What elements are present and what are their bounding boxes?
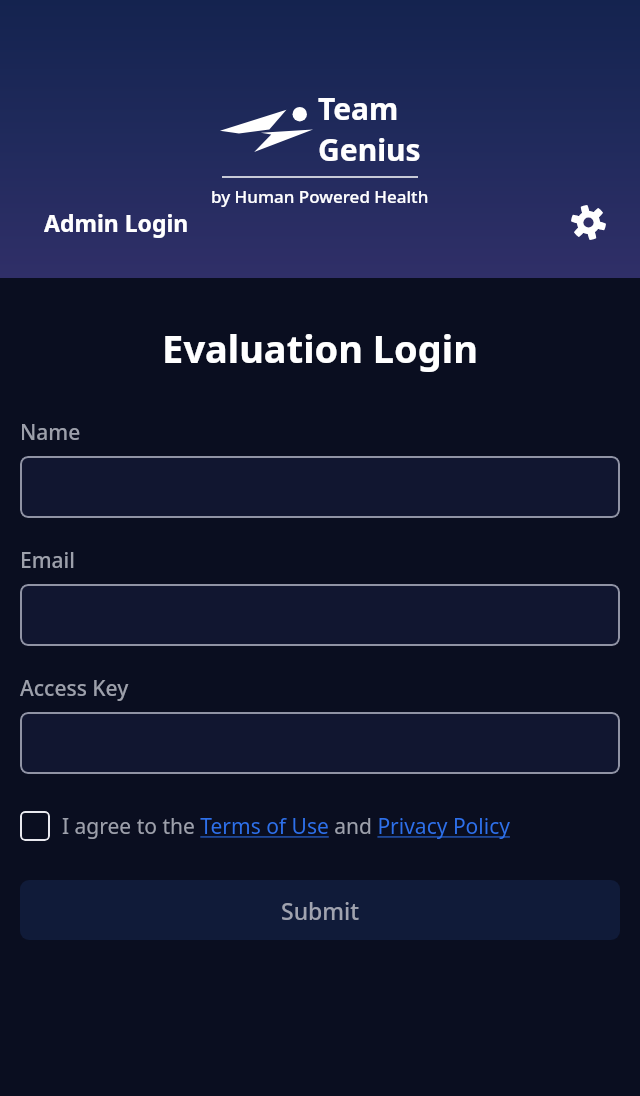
staticText: I agree to the Terms of Use and Privacy … xyxy=(62,812,510,841)
staticText: Team xyxy=(318,88,399,129)
staticText: Submit xyxy=(281,895,360,926)
staticText: Email xyxy=(20,546,75,575)
button[interactable]: Admin Login xyxy=(44,207,189,238)
button[interactable]: Settings xyxy=(566,200,610,244)
staticText: Evaluation Login xyxy=(20,322,620,374)
staticText: by Human Powered Health xyxy=(211,185,429,208)
button[interactable] xyxy=(20,712,620,774)
button[interactable] xyxy=(20,456,620,518)
staticText: Genius xyxy=(318,129,421,170)
button[interactable] xyxy=(20,584,620,646)
button[interactable]: Submit xyxy=(20,880,620,940)
button[interactable]: I agree to the Terms of Use and Privacy … xyxy=(20,811,620,841)
staticText: Access Key xyxy=(20,674,129,703)
staticText: Name xyxy=(20,418,81,447)
